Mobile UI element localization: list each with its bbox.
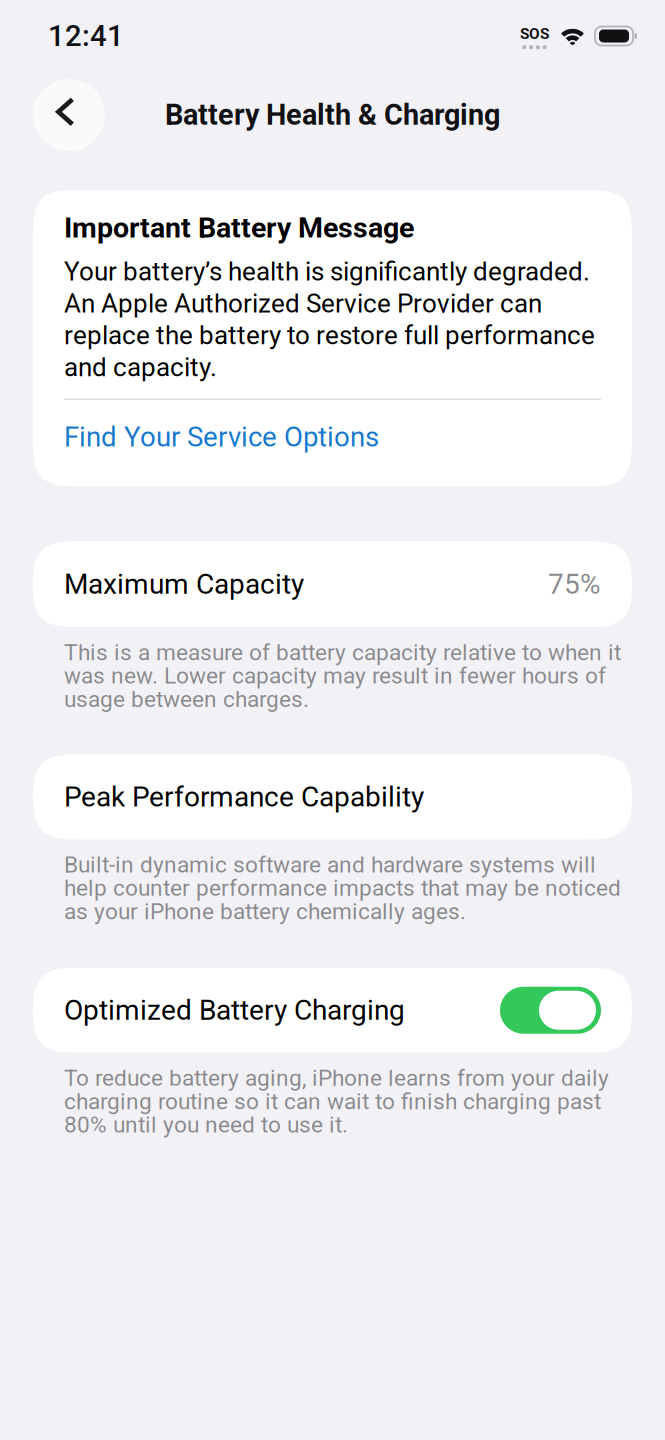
button[interactable]: Find Your Service Options xyxy=(64,400,601,453)
staticText: Built-in dynamic software and hardware s… xyxy=(64,851,621,925)
staticText: Find Your Service Options xyxy=(64,421,379,453)
button[interactable]: Maximum Capacity xyxy=(33,541,632,627)
button[interactable]: Peak Performance Capability xyxy=(33,754,632,839)
staticText: Important Battery Message xyxy=(64,211,414,244)
staticText: To reduce battery aging, iPhone learns f… xyxy=(64,1065,609,1138)
staticText: SOS xyxy=(520,25,549,43)
button[interactable]: Optimized Battery Charging xyxy=(33,968,632,1053)
staticText: Peak Performance Capability xyxy=(64,780,424,813)
staticText: Maximum Capacity xyxy=(64,568,304,601)
staticText: Optimized Battery Charging xyxy=(64,994,405,1027)
staticText: Battery Health & Charging xyxy=(165,98,500,132)
staticText: Your battery’s health is significantly d… xyxy=(64,256,595,382)
button[interactable]: Back xyxy=(33,79,105,151)
staticText: This is a measure of battery capacity re… xyxy=(64,639,621,712)
staticText: 12:41 xyxy=(48,19,124,53)
staticText: 75% xyxy=(548,568,601,601)
